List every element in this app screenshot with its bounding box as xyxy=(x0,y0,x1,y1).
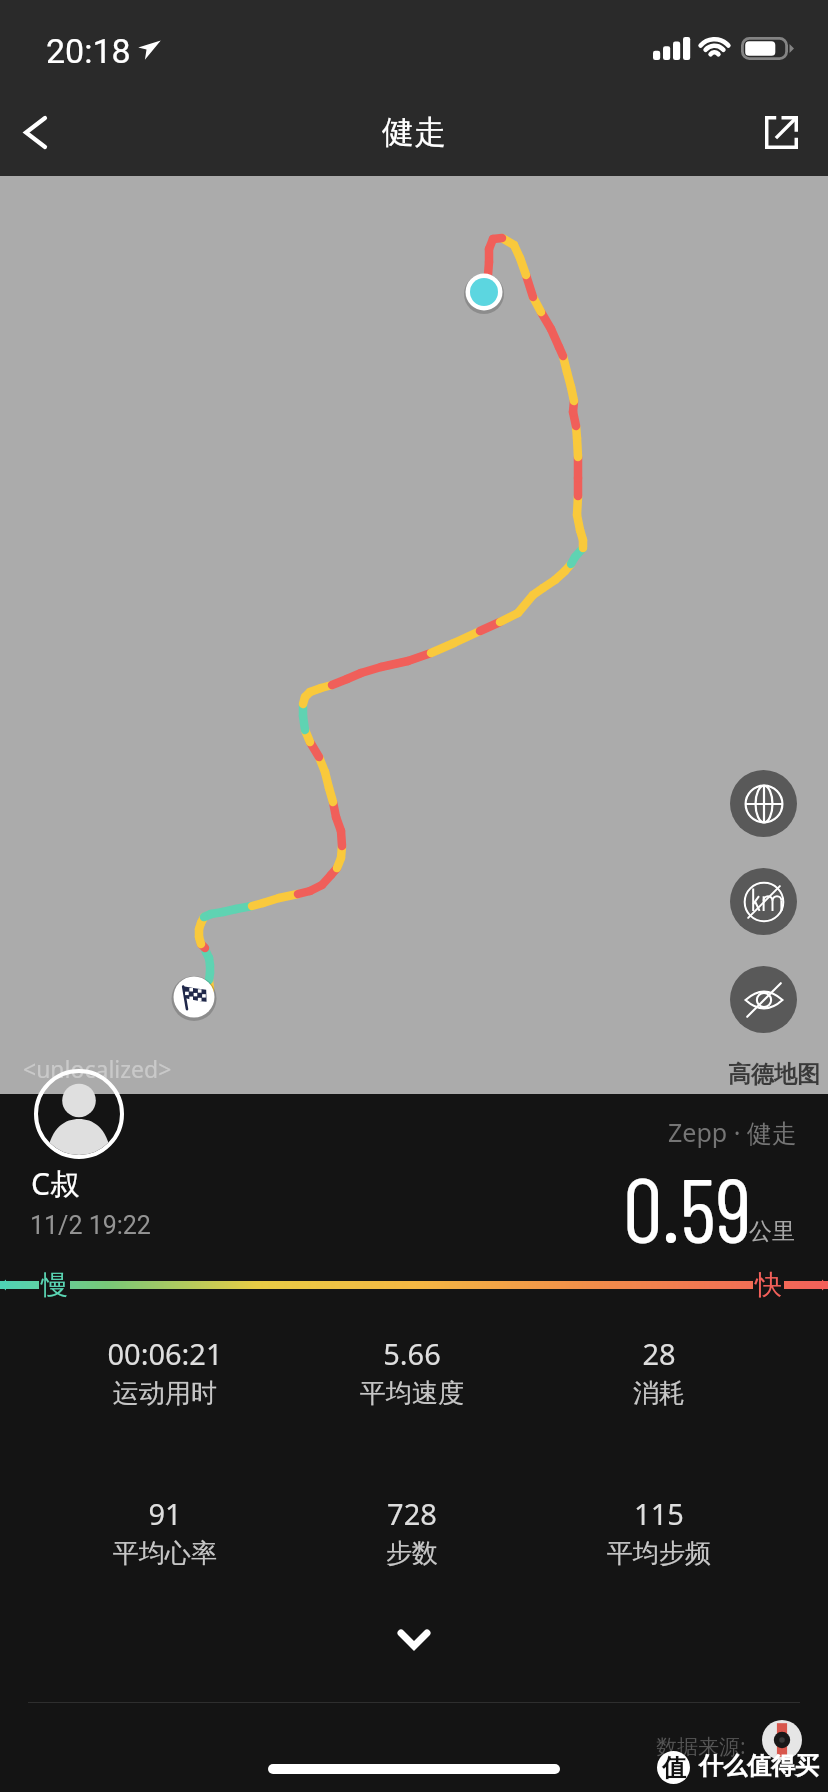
staticText: 慢 xyxy=(41,1268,68,1302)
staticText: 115 xyxy=(634,1494,684,1533)
button[interactable]: Back xyxy=(0,88,88,176)
staticText: 步数 xyxy=(386,1537,438,1570)
button[interactable]: Hide route xyxy=(730,966,797,1033)
staticText: 运动用时 xyxy=(113,1377,217,1410)
staticText: 数据来源: xyxy=(656,1732,746,1761)
staticText: 11/2 19:22 xyxy=(30,1211,151,1240)
staticText: 728 xyxy=(387,1494,437,1533)
staticText: 28 xyxy=(642,1334,676,1373)
staticText: 91 xyxy=(148,1494,182,1533)
staticText: C叔 xyxy=(31,1163,80,1204)
staticText: 快 xyxy=(755,1268,782,1302)
button[interactable]: Share xyxy=(740,88,828,176)
button[interactable]: Map layers xyxy=(730,770,797,837)
staticText: 什么值得买 xyxy=(699,1751,819,1781)
staticText: 健走 xyxy=(382,112,446,152)
staticText: 消耗 xyxy=(633,1377,685,1410)
staticText: 平均速度 xyxy=(360,1377,464,1410)
button[interactable]: Toggle speed display xyxy=(730,868,797,935)
staticText: 平均心率 xyxy=(113,1537,217,1570)
staticText: 20:18 xyxy=(46,31,131,71)
staticText: 高德地图 xyxy=(728,1060,820,1089)
staticText: Zepp · 健走 xyxy=(668,1115,797,1149)
button[interactable]: Expand details xyxy=(0,1608,828,1670)
staticText: 公里 xyxy=(749,1217,795,1246)
staticText: 0.59 xyxy=(623,1154,752,1261)
staticText: 5.66 xyxy=(383,1334,441,1373)
staticText: 00:06:21 xyxy=(107,1334,223,1373)
staticText: <unlocalized> xyxy=(23,1053,172,1084)
staticText: 值 xyxy=(662,1753,686,1783)
staticText: 平均步频 xyxy=(607,1537,711,1570)
